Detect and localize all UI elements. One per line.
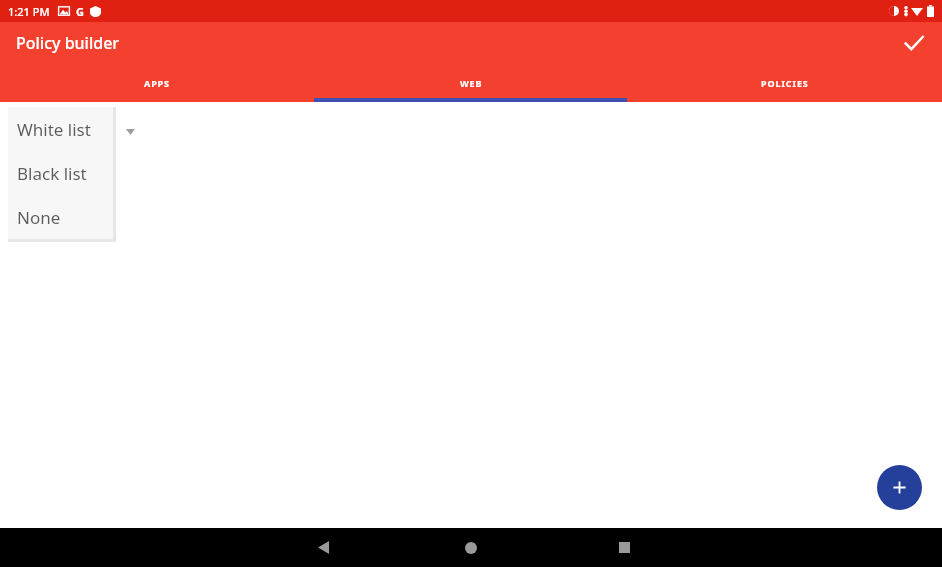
button[interactable]: Recent apps [600, 528, 648, 567]
staticText: 1:21 PM [8, 4, 50, 19]
staticText: WEB [460, 77, 483, 89]
staticText: POLICIES [761, 77, 809, 89]
button[interactable]: Add entry [877, 465, 922, 510]
button[interactable]: None [8, 195, 113, 239]
button[interactable]: APPS [0, 64, 314, 102]
staticText: APPS [144, 77, 170, 89]
button[interactable]: White list [8, 107, 113, 151]
staticText: None [17, 206, 61, 229]
button[interactable]: Save policy [894, 23, 934, 63]
button[interactable]: Open list type selector [116, 118, 144, 146]
staticText: White list [17, 118, 91, 141]
staticText: Black list [17, 162, 87, 185]
button[interactable]: POLICIES [628, 64, 942, 102]
button[interactable]: Home [447, 528, 495, 567]
staticText: G [76, 4, 84, 19]
staticText: Policy builder [16, 32, 120, 54]
button[interactable]: Black list [8, 151, 113, 195]
button[interactable]: WEB [314, 64, 628, 102]
button[interactable]: Back [300, 528, 348, 567]
